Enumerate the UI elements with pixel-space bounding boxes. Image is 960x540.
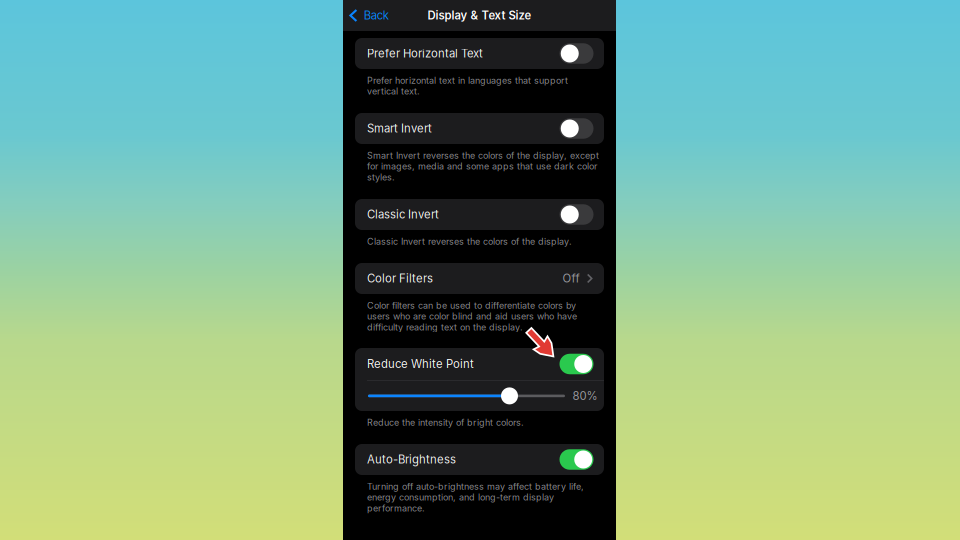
staticText: Reduce White Point bbox=[367, 357, 474, 371]
staticText: Color filters can be used to differentia… bbox=[367, 300, 577, 333]
button[interactable]: Reduce White Point bbox=[355, 348, 604, 380]
staticText: Off bbox=[562, 272, 579, 285]
button[interactable]: Prefer Horizontal Text bbox=[355, 38, 604, 69]
staticText: Color Filters bbox=[367, 272, 433, 285]
staticText: Prefer Horizontal Text bbox=[367, 47, 483, 60]
staticText: 80% bbox=[572, 389, 597, 403]
button[interactable]: Color Filters bbox=[355, 263, 604, 294]
button[interactable]: Back bbox=[343, 0, 395, 31]
staticText: Classic Invert reverses the colors of th… bbox=[367, 236, 572, 247]
staticText: Turning off auto-brightness may affect b… bbox=[367, 481, 584, 514]
button[interactable]: Auto-Brightness bbox=[355, 444, 604, 475]
staticText: Smart Invert reverses the colors of the … bbox=[367, 150, 599, 183]
staticText: Display & Text Size bbox=[427, 9, 531, 22]
staticText: Prefer horizontal text in languages that… bbox=[367, 75, 568, 97]
staticText: Classic Invert bbox=[367, 208, 439, 221]
button[interactable]: Classic Invert bbox=[355, 199, 604, 230]
staticText: Back bbox=[364, 9, 389, 22]
button[interactable]: Smart Invert bbox=[355, 113, 604, 144]
staticText: Smart Invert bbox=[367, 122, 432, 135]
staticText: Reduce the intensity of bright colors. bbox=[367, 417, 524, 428]
staticText: Auto-Brightness bbox=[367, 453, 456, 466]
